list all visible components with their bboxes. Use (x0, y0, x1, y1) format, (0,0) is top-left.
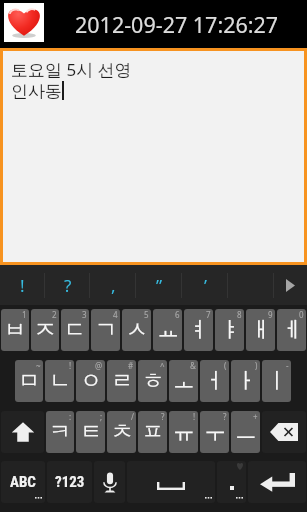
staticText: 1 (22, 309, 27, 320)
button[interactable]: ㅓ (200, 360, 229, 402)
staticText: ’ (204, 274, 207, 297)
button[interactable]: ㅋ (46, 411, 74, 453)
button[interactable]: ABC (1, 461, 45, 503)
staticText: ㅍ (142, 418, 164, 446)
staticText: ㅗ (173, 367, 195, 395)
button[interactable]: Shift (1, 411, 44, 453)
button[interactable]: ㅂ (1, 309, 29, 351)
staticText: ㄱ (95, 316, 117, 344)
staticText: ㅠ (173, 418, 195, 446)
staticText: : (69, 411, 72, 422)
staticText: 8 (237, 309, 242, 320)
button[interactable]: ?123 (47, 461, 92, 503)
staticText: ㅔ (281, 316, 303, 344)
staticText: ? (161, 411, 165, 422)
staticText: ㅓ (204, 367, 226, 395)
button[interactable]: ㅏ (231, 360, 260, 402)
staticText: ㅡ (235, 418, 257, 446)
button[interactable]: ㅡ (231, 411, 260, 453)
button[interactable]: ㄷ (61, 309, 89, 351)
staticText: ; (100, 411, 103, 422)
staticText: ㄹ (111, 367, 133, 395)
staticText: ㄴ (49, 367, 71, 395)
staticText: ! (193, 411, 196, 422)
button[interactable]: ㅌ (76, 411, 105, 453)
button[interactable]: Voice input (94, 461, 125, 503)
staticText: 0 (299, 309, 304, 320)
staticText: ! (20, 274, 25, 297)
button[interactable]: ㅑ (215, 309, 244, 351)
staticText: ! (69, 360, 72, 371)
staticText: ~ (36, 360, 41, 371)
button[interactable]: ㅅ (122, 309, 151, 351)
staticText: @ (95, 360, 103, 371)
staticText: ㅕ (188, 316, 210, 344)
staticText: ㅈ (34, 316, 56, 344)
button[interactable]: ㅎ (138, 360, 167, 402)
staticText: ㅐ (250, 316, 272, 344)
button[interactable]: ㅁ (15, 360, 43, 402)
staticText: ㅛ (157, 316, 179, 344)
button[interactable]: ㅣ (262, 360, 291, 402)
staticText: , (111, 274, 116, 297)
button[interactable]: ㅔ (277, 309, 306, 351)
staticText: ㅑ (219, 316, 241, 344)
button[interactable]: ㅇ (76, 360, 105, 402)
staticText: ㅁ (18, 367, 40, 395)
button[interactable]: ㅛ (153, 309, 182, 351)
button[interactable]: , (90, 265, 136, 305)
staticText: ?123 (55, 473, 85, 491)
staticText: 2012-09-27 17:26:27 (75, 10, 279, 39)
staticText: ㅣ (266, 367, 288, 395)
button[interactable]: Space (127, 461, 215, 503)
button[interactable]: ㄴ (45, 360, 74, 402)
staticText: + (253, 411, 258, 422)
staticText: ㅌ (80, 418, 102, 446)
button[interactable]: ㄹ (107, 360, 136, 402)
staticText: ㅂ (4, 316, 26, 344)
staticText: ㅅ (126, 316, 148, 344)
button[interactable]: ㅗ (169, 360, 198, 402)
button[interactable]: ” (136, 265, 182, 305)
staticText: ^ (160, 360, 165, 371)
staticText: / (131, 411, 134, 422)
staticText: ABC (10, 473, 36, 491)
staticText: 7 (206, 309, 211, 320)
button[interactable]: ㅈ (31, 309, 59, 351)
staticText: ” (156, 274, 163, 297)
staticText: ? (223, 411, 227, 422)
staticText: ㅋ (49, 418, 71, 446)
button[interactable]: ! (0, 265, 45, 305)
button[interactable]: ? (45, 265, 90, 305)
button[interactable]: ㄱ (91, 309, 120, 351)
button[interactable]: Period (217, 461, 246, 503)
staticText: ? (64, 274, 72, 297)
staticText: 3 (82, 309, 87, 320)
button[interactable]: ㅠ (169, 411, 198, 453)
staticText: # (128, 360, 134, 371)
button[interactable]: Enter (248, 461, 306, 503)
staticText: 9 (268, 309, 273, 320)
staticText: ㅊ (111, 418, 133, 446)
button[interactable]: More suggestions (274, 265, 307, 305)
button[interactable]: ’ (182, 265, 228, 305)
staticText: ㅎ (142, 367, 164, 395)
button[interactable]: Backspace (262, 411, 306, 453)
button[interactable]: ㅊ (107, 411, 136, 453)
staticText: 인사동 (11, 81, 62, 102)
staticText: 토요일 5시 선영 (11, 58, 132, 81)
staticText: ) (255, 360, 258, 371)
button[interactable]: ㅐ (246, 309, 275, 351)
staticText: ㅜ (204, 418, 226, 446)
staticText: - (286, 360, 289, 371)
button[interactable]: ㅜ (200, 411, 229, 453)
staticText: 4 (113, 309, 118, 320)
staticText: ( (224, 360, 227, 371)
staticText: 6 (175, 309, 180, 320)
staticText: ㄷ (64, 316, 86, 344)
staticText: ㅏ (235, 367, 257, 395)
button[interactable]: ㅕ (184, 309, 213, 351)
button[interactable]: ㅍ (138, 411, 167, 453)
staticText: 5 (144, 309, 149, 320)
